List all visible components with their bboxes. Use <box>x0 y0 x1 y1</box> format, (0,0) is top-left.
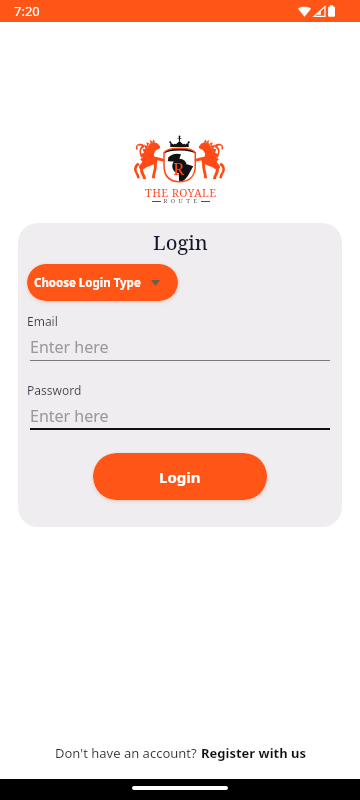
staticText: Login <box>159 467 201 487</box>
staticText: Password <box>27 382 82 398</box>
staticText: Enter here <box>30 336 109 358</box>
staticText: Register with us <box>201 744 306 762</box>
button[interactable]: Register with us <box>201 744 306 762</box>
staticText: R O U T E <box>161 197 201 205</box>
staticText: Choose Login Type <box>34 275 141 291</box>
button[interactable]: Choose Login Type <box>27 264 178 301</box>
staticText: 7:20 <box>14 2 40 20</box>
staticText: Login <box>153 229 208 256</box>
button[interactable]: Login <box>93 453 267 500</box>
staticText: THE ROYALE <box>145 185 217 200</box>
staticText: R <box>173 157 185 180</box>
staticText: Enter here <box>30 405 109 427</box>
staticText: Don't have an account? <box>55 744 201 762</box>
staticText: Email <box>27 313 58 329</box>
